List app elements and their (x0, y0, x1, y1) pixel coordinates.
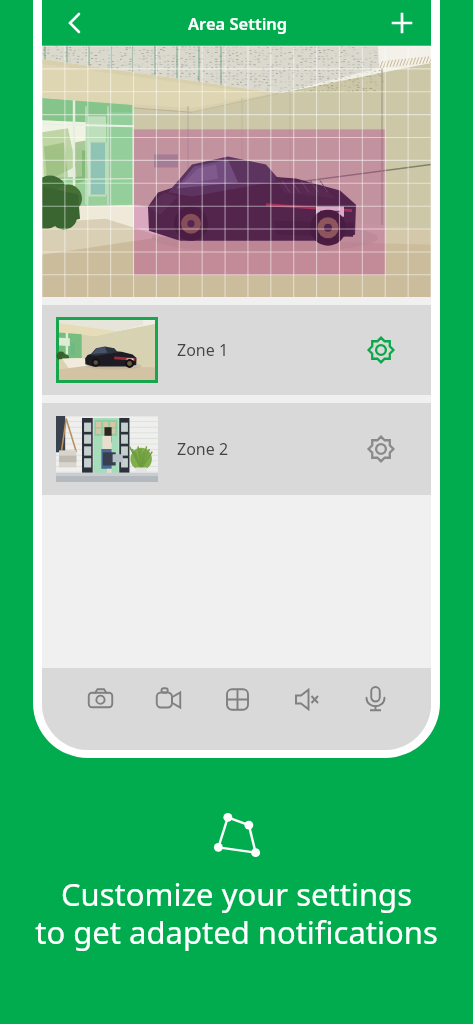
staticText: Area Setting (188, 12, 288, 34)
button[interactable]: Take photo (66, 668, 134, 750)
button[interactable]: Mute (272, 668, 341, 750)
button[interactable]: Zone 2 (42, 403, 431, 495)
button[interactable]: Zone settings (357, 425, 405, 473)
button[interactable]: Zone 1 (42, 305, 431, 395)
button[interactable]: Back (52, 1, 96, 45)
button[interactable]: Grid view (203, 668, 272, 750)
button[interactable]: Zone settings (357, 326, 405, 374)
button[interactable]: Record video (134, 668, 203, 750)
button[interactable]: Add (380, 1, 424, 45)
staticText: Zone 1 (177, 339, 229, 361)
staticText: Customize your settings to get adapted n… (35, 873, 438, 953)
staticText: Zone 2 (177, 438, 229, 460)
button[interactable]: Microphone (341, 668, 410, 750)
